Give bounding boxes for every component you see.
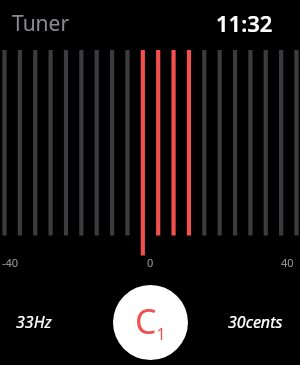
staticText: 11:32 xyxy=(216,8,273,38)
staticText: 40 xyxy=(281,255,294,270)
staticText: Tuner xyxy=(12,9,70,38)
staticText: -40 xyxy=(2,255,19,270)
button[interactable]: 30cents xyxy=(228,311,283,333)
button[interactable]: 33Hz xyxy=(16,311,52,333)
button[interactable]: Detected note C1 xyxy=(113,285,188,360)
staticText: 0 xyxy=(147,255,154,270)
staticText: C1 xyxy=(135,298,166,345)
